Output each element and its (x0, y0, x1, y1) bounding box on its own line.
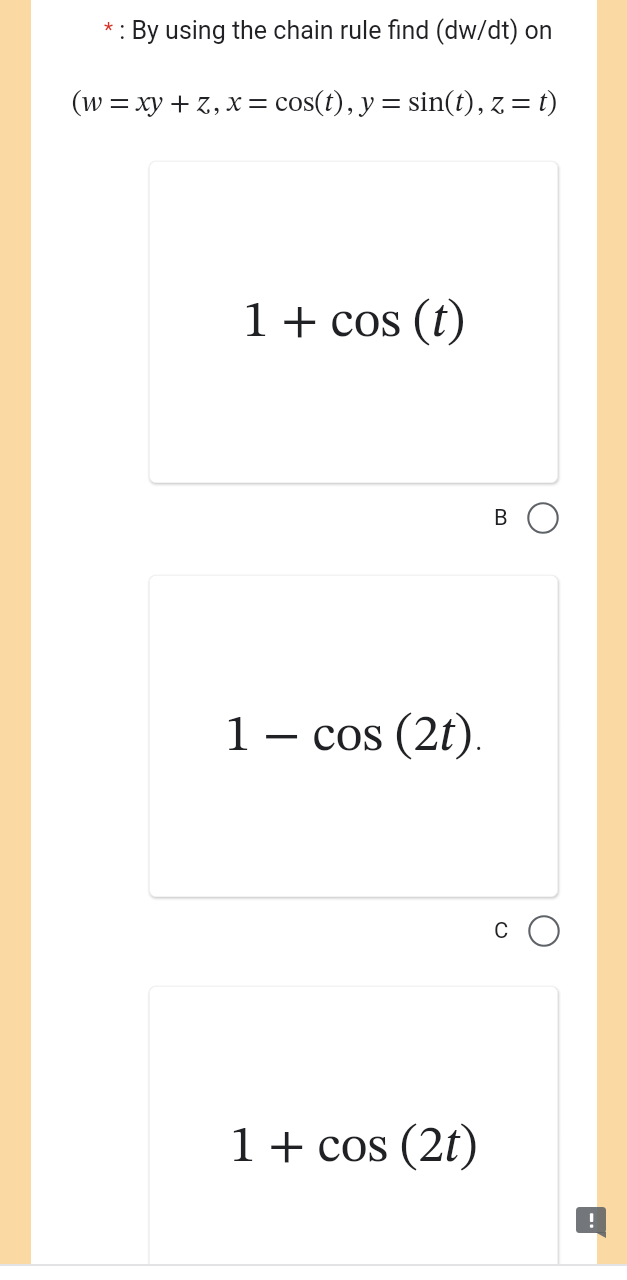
staticText: 1 + cos (2t) (230, 1121, 478, 1173)
button[interactable]: Report a problem (576, 1207, 606, 1238)
staticText: 1 + cos (t) (243, 296, 465, 348)
button[interactable]: 1 − cos (2t) . (149, 575, 558, 897)
button[interactable]: C (494, 914, 590, 948)
staticText: C (494, 918, 509, 944)
button[interactable]: 1 + cos (t) (149, 161, 558, 483)
staticText: 1 − cos (2t) . (225, 710, 482, 762)
button[interactable]: B (494, 501, 590, 535)
staticText: B (494, 505, 508, 531)
staticText: * : By using the chain rule find (dw/dt)… (104, 16, 553, 45)
staticText: (w = xy + z , x = cos(t) , y = sin(t) , … (72, 89, 557, 118)
button[interactable]: 1 + cos (2t) (149, 986, 558, 1280)
